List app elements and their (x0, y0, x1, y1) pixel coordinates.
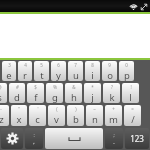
staticText: s (0, 91, 2, 103)
button[interactable]: % (46, 83, 63, 103)
staticText: 4 (24, 62, 27, 68)
staticText: - (0, 106, 2, 112)
button[interactable]: @ (0, 83, 7, 103)
button[interactable]: Numbers and symbols (125, 128, 149, 149)
button[interactable]: Space (45, 128, 103, 149)
button[interactable]: * (84, 83, 101, 103)
button[interactable]: ~ (86, 105, 103, 126)
staticText: ( (56, 106, 58, 112)
staticText: 7 (74, 62, 77, 68)
button[interactable]: ' (29, 105, 46, 126)
staticText: = (131, 106, 134, 112)
staticText: $ (34, 84, 37, 90)
button[interactable]: " (11, 105, 27, 126)
staticText: + (112, 106, 115, 112)
staticText: 0 (125, 62, 128, 68)
button[interactable]: ; (105, 128, 123, 149)
staticText: ! (130, 84, 132, 90)
button[interactable]: - (0, 105, 9, 126)
button[interactable]: 4 (18, 61, 32, 81)
button[interactable]: & (65, 83, 82, 103)
staticText: 3 (8, 62, 11, 68)
staticText: : (33, 132, 35, 138)
staticText: f (34, 91, 38, 103)
staticText: " (18, 106, 20, 112)
staticText: ~ (93, 106, 96, 112)
button[interactable]: 3 (2, 61, 16, 81)
staticText: c (35, 113, 40, 126)
staticText: l (129, 91, 132, 103)
staticText: o (107, 69, 113, 81)
button[interactable]: 0 (119, 61, 134, 81)
staticText: p (124, 69, 130, 81)
button[interactable]: ? (103, 83, 120, 103)
staticText: / (131, 113, 135, 126)
staticText: k (109, 91, 115, 103)
staticText: , (33, 138, 35, 145)
staticText: v (54, 113, 59, 126)
button[interactable]: ! (122, 83, 139, 103)
staticText: * (91, 84, 94, 90)
staticText: x (16, 113, 22, 126)
staticText: ' (37, 106, 39, 112)
staticText: 123 (130, 133, 144, 144)
staticText: d (14, 91, 20, 103)
staticText: & (72, 84, 76, 90)
staticText: m (109, 113, 118, 126)
staticText: b (73, 113, 79, 126)
staticText: 5 (40, 62, 43, 68)
staticText: h (71, 91, 77, 103)
staticText: . (113, 138, 115, 145)
staticText: z (0, 113, 4, 126)
staticText: r (23, 69, 27, 81)
staticText: 6 (57, 62, 60, 68)
staticText: i (91, 69, 94, 81)
button[interactable]: : (25, 128, 43, 149)
staticText: % (53, 84, 57, 90)
staticText: ) (75, 106, 77, 112)
button[interactable]: = (124, 105, 141, 126)
button[interactable]: 5 (34, 61, 49, 81)
staticText: 9 (108, 62, 111, 68)
staticText: n (92, 113, 98, 126)
staticText: # (16, 84, 19, 90)
button[interactable]: 6 (51, 61, 66, 81)
button[interactable]: 9 (102, 61, 117, 81)
button[interactable]: 7 (68, 61, 83, 81)
staticText: @ (0, 84, 2, 90)
staticText: ; (113, 132, 115, 138)
staticText: 8 (91, 62, 94, 68)
staticText: y (56, 69, 61, 81)
button[interactable]: # (9, 83, 25, 103)
staticText: t (40, 69, 44, 81)
button[interactable]: Keyboard settings (1, 128, 23, 149)
button[interactable]: 8 (85, 61, 100, 81)
button[interactable]: $ (27, 83, 44, 103)
staticText: j (91, 91, 94, 103)
staticText: g (52, 91, 58, 103)
button[interactable]: + (105, 105, 122, 126)
staticText: e (6, 69, 12, 81)
staticText: u (73, 69, 79, 81)
staticText: ? (111, 84, 113, 90)
button[interactable]: ) (67, 105, 84, 126)
button[interactable]: ( (48, 105, 65, 126)
